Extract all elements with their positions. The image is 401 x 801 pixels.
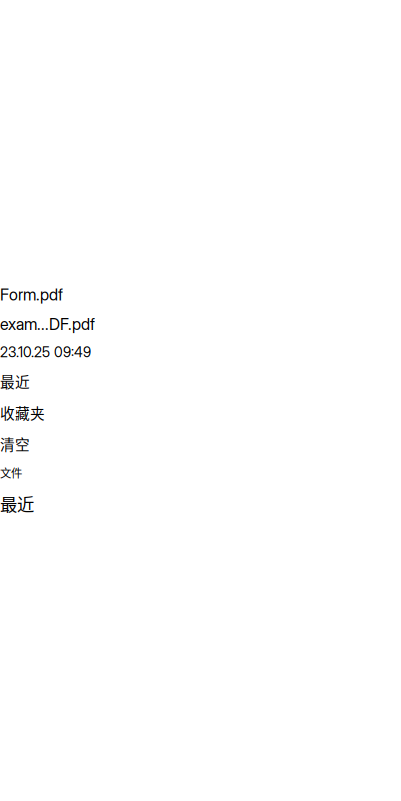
staticText: 文件 [0, 464, 22, 481]
staticText: 23.10.25 09:49 [0, 344, 91, 361]
staticText: 最近 [0, 371, 30, 392]
staticText: exam...DF.pdf [0, 314, 95, 334]
staticText: Form.pdf [0, 285, 63, 304]
staticText: 收藏夹 [0, 402, 45, 423]
staticText: 最近 [0, 491, 34, 516]
staticText: 清空 [0, 433, 30, 454]
